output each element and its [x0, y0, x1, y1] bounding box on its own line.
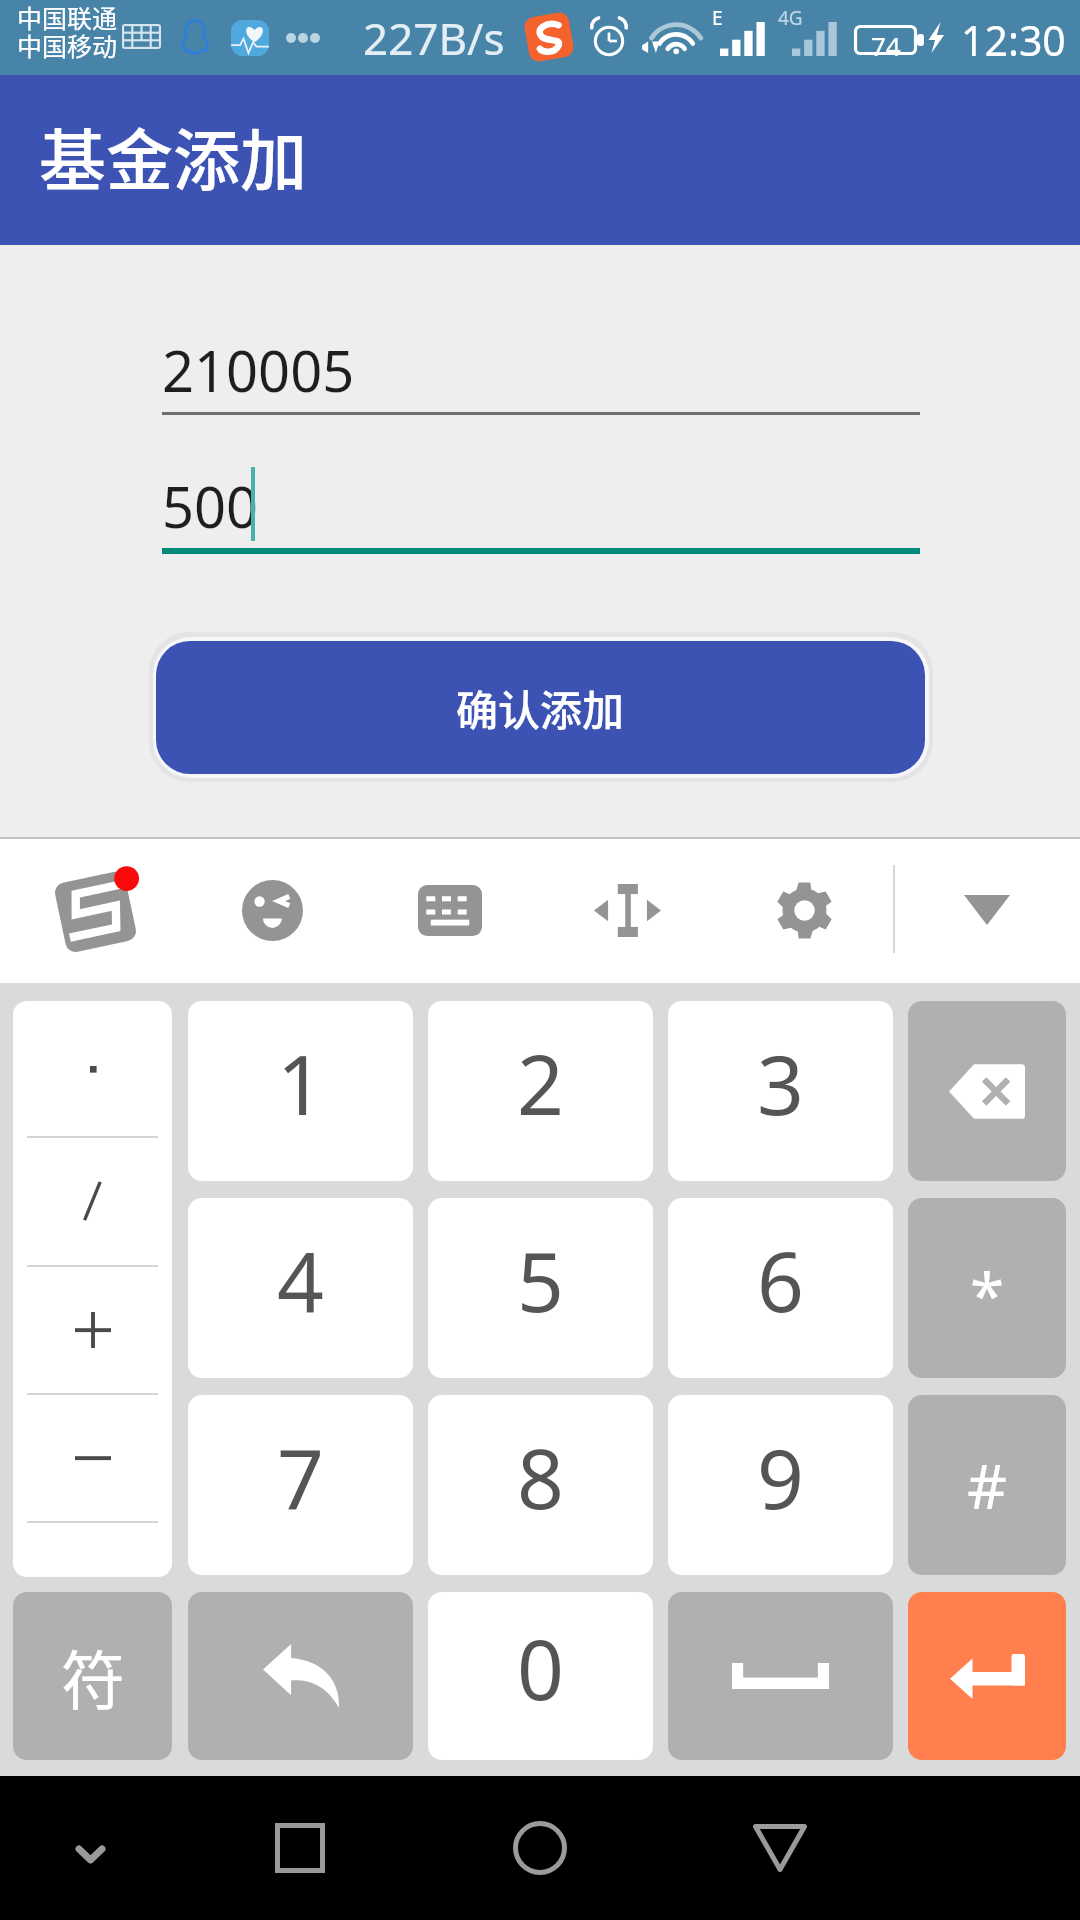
button[interactable]: Hide keyboard: [927, 850, 1047, 970]
button[interactable]: More symbols: [13, 1522, 172, 1577]
button[interactable]: Recents: [240, 1776, 360, 1920]
button[interactable]: Hide keyboard: [30, 1776, 150, 1920]
staticText: #: [967, 1443, 1008, 1527]
button[interactable]: 9: [668, 1395, 893, 1575]
button[interactable]: 0: [428, 1592, 653, 1760]
staticText: 4: [277, 1224, 324, 1336]
button[interactable]: Keyboard layout: [390, 850, 510, 970]
staticText: 500: [162, 468, 259, 544]
staticText: 中国移动: [17, 27, 118, 63]
staticText: 227B/s: [363, 8, 505, 68]
staticText: 7: [277, 1421, 324, 1533]
staticText: 符: [61, 1630, 125, 1723]
staticText: 6: [757, 1224, 804, 1336]
button[interactable]: Sogou input: [39, 850, 159, 970]
button[interactable]: Plus: [13, 1266, 172, 1394]
button[interactable]: 符: [13, 1592, 172, 1760]
button[interactable]: Back: [720, 1776, 840, 1920]
staticText: 12:30: [961, 12, 1066, 68]
button[interactable]: Minus: [13, 1394, 172, 1522]
button[interactable]: 7: [188, 1395, 413, 1575]
staticText: 210005: [162, 332, 355, 408]
button[interactable]: Settings: [744, 850, 864, 970]
button[interactable]: 确认添加: [156, 641, 925, 774]
button[interactable]: Decimal point: [13, 1001, 172, 1136]
button[interactable]: 3: [668, 1001, 893, 1181]
staticText: 74: [871, 28, 901, 63]
button[interactable]: 1: [188, 1001, 413, 1181]
staticText: 1: [277, 1027, 324, 1139]
button[interactable]: Space: [668, 1592, 893, 1760]
staticText: 确认添加: [456, 677, 625, 738]
staticText: 9: [757, 1421, 804, 1533]
button[interactable]: Enter: [908, 1592, 1066, 1760]
button[interactable]: 6: [668, 1198, 893, 1378]
button[interactable]: Divide: [13, 1137, 172, 1265]
button[interactable]: Home: [480, 1776, 600, 1920]
staticText: 0: [517, 1612, 564, 1724]
button[interactable]: *: [908, 1198, 1066, 1378]
button[interactable]: 4: [188, 1198, 413, 1378]
button[interactable]: 8: [428, 1395, 653, 1575]
button[interactable]: Emoji: [212, 850, 332, 970]
staticText: *: [970, 1252, 1005, 1336]
staticText: 4G: [778, 5, 803, 31]
button[interactable]: 5: [428, 1198, 653, 1378]
staticText: 8: [517, 1421, 564, 1533]
button[interactable]: Undo: [188, 1592, 413, 1760]
button[interactable]: Move cursor: [567, 850, 687, 970]
staticText: 中国联通: [17, 0, 118, 35]
staticText: 基金添加: [39, 107, 307, 204]
staticText: 2: [517, 1027, 564, 1139]
button[interactable]: 2: [428, 1001, 653, 1181]
button[interactable]: Backspace: [908, 1001, 1066, 1181]
staticText: 3: [757, 1027, 804, 1139]
staticText: E: [712, 5, 723, 31]
button[interactable]: #: [908, 1395, 1066, 1575]
staticText: 5: [517, 1224, 564, 1336]
